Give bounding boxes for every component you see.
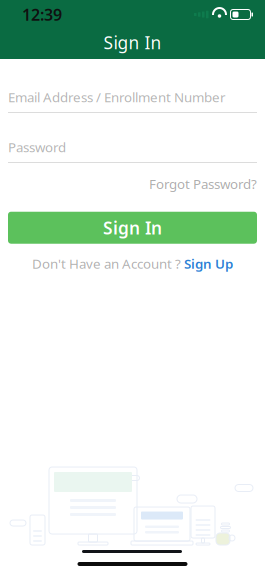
staticText: Password bbox=[8, 138, 66, 156]
staticText: Forgot Password? bbox=[149, 175, 257, 193]
button[interactable]: Forgot Password? bbox=[8, 163, 257, 197]
staticText: Sign In bbox=[103, 31, 161, 54]
staticText: Sign In bbox=[103, 216, 162, 239]
staticText: Don't Have an Account ? bbox=[32, 255, 181, 272]
button[interactable]: Sign Up bbox=[184, 255, 233, 272]
staticText: Sign Up bbox=[184, 255, 233, 272]
button[interactable]: Sign In bbox=[8, 212, 257, 244]
staticText: Email Address / Enrollment Number bbox=[8, 88, 226, 106]
staticText: 12:39 bbox=[22, 4, 62, 25]
